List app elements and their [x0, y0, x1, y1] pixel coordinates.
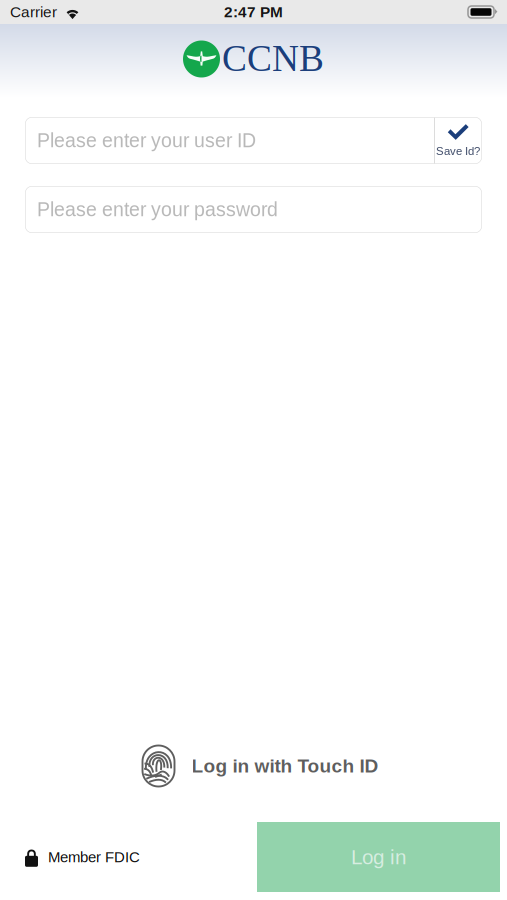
- staticText: Log in: [351, 845, 406, 869]
- staticText: Save Id?: [436, 145, 480, 157]
- staticText: Carrier: [10, 3, 57, 20]
- staticText: 2:47 PM: [224, 3, 283, 20]
- staticText: Log in with Touch ID: [191, 755, 378, 777]
- staticText: Please enter your password: [37, 199, 278, 220]
- staticText: Member FDIC: [48, 849, 140, 865]
- button[interactable]: Log in with Touch ID: [133, 744, 373, 788]
- button[interactable]: Save Id?: [434, 117, 482, 163]
- staticText: CCNB: [222, 38, 324, 79]
- staticText: Please enter your user ID: [37, 130, 256, 151]
- button[interactable]: Log in: [257, 822, 500, 892]
